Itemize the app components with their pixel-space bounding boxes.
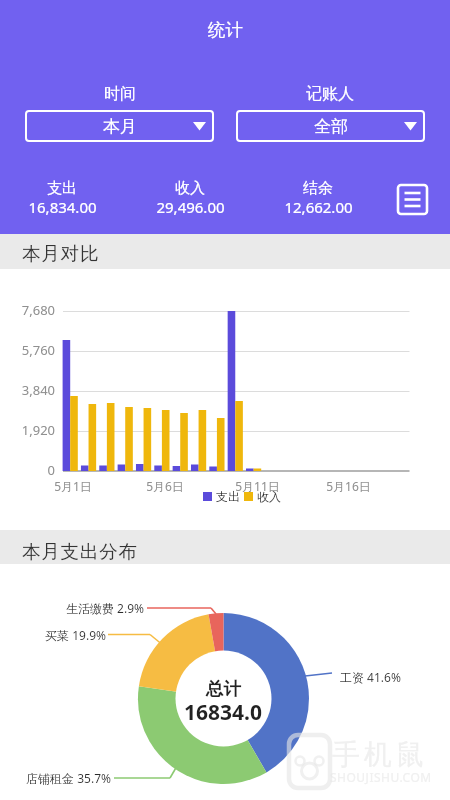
staticText: 工资 41.6% (340, 669, 401, 685)
staticText: 12,662.00 (284, 197, 353, 215)
button[interactable] (394, 181, 431, 218)
staticText: 5月6日 (146, 478, 184, 493)
staticText: 收入 (175, 179, 205, 197)
staticText: 本月对比 (22, 242, 100, 260)
staticText: 16834.0 (184, 698, 262, 720)
staticText: 5月11日 (235, 478, 280, 493)
staticText: 支出 (47, 179, 77, 197)
staticText: 统计 (208, 19, 243, 37)
staticText: 支出 (216, 489, 240, 504)
staticText: 5,760 (21, 341, 55, 357)
staticText: 生活缴费 2.9% (65, 600, 144, 616)
staticText: 收入 (257, 489, 281, 504)
staticText: 记账人 (306, 84, 354, 102)
staticText: 手机鼠 (330, 737, 426, 767)
staticText: SHOUJISHU.COM (330, 769, 432, 783)
staticText: 结余 (303, 179, 333, 197)
staticText: 本月 (103, 116, 137, 137)
staticText: 总计 (206, 678, 241, 698)
staticText: 3,840 (21, 381, 55, 397)
button[interactable]: 本月 (25, 110, 214, 142)
staticText: 16,834.00 (28, 197, 97, 215)
staticText: 买菜 19.9% (45, 627, 106, 643)
staticText: 5月16日 (326, 478, 371, 493)
button[interactable]: 全部 (236, 110, 425, 142)
staticText: 29,496.00 (156, 197, 225, 215)
staticText: 5月1日 (54, 478, 92, 493)
staticText: 店铺租金 35.7% (26, 770, 111, 786)
staticText: 全部 (314, 116, 348, 137)
staticText: 时间 (104, 84, 136, 102)
staticText: 0 (47, 461, 55, 477)
staticText: 1,920 (21, 421, 55, 437)
staticText: 本月支出分布 (22, 540, 138, 558)
staticText: 7,680 (21, 301, 55, 317)
